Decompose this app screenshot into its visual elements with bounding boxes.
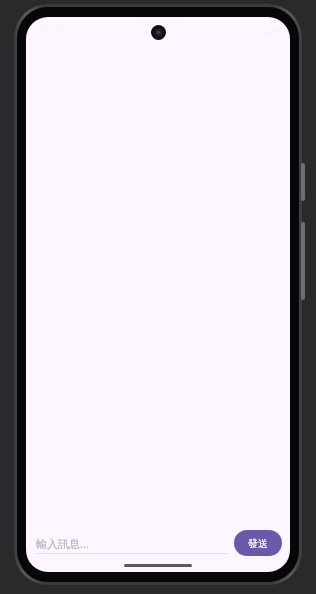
- staticText: 輸入訊息...: [36, 536, 89, 551]
- staticText: 發送: [248, 537, 268, 550]
- button[interactable]: 發送: [234, 530, 282, 556]
- button[interactable]: 輸入訊息...: [36, 533, 228, 554]
